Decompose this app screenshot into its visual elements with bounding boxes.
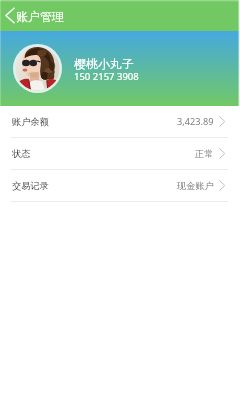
staticText: 正常 (195, 148, 214, 160)
staticText: 账户余额 (12, 116, 49, 128)
staticText: 账户管理 (16, 9, 64, 24)
staticText: 3,423.89 (177, 115, 214, 128)
button[interactable]: 账户余额 (0, 106, 240, 137)
staticText: 樱桃小丸子 (74, 56, 134, 71)
staticText: 交易记录 (12, 180, 49, 192)
staticText: 150 2157 3908 (74, 70, 139, 83)
button[interactable]: Back (0, 0, 17, 31)
button[interactable]: 樱桃小丸子 (0, 31, 240, 106)
staticText: 现金账户 (177, 180, 214, 192)
button[interactable]: 交易记录 (0, 170, 240, 201)
staticText: 状态 (12, 148, 31, 160)
button[interactable]: 状态 (0, 138, 240, 169)
